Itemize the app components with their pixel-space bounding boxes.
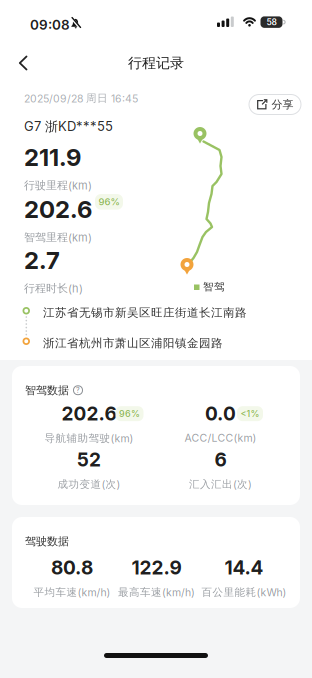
staticText: 0.0 (205, 400, 236, 427)
staticText: 58 (266, 16, 276, 28)
staticText: 211.9 (24, 140, 81, 175)
staticText: 202.6 (61, 400, 116, 427)
staticText: 122.9 (131, 554, 181, 581)
staticText: 浙江省杭州市萧山区浦阳镇金园路 (43, 334, 223, 352)
staticText: <1% (240, 407, 259, 420)
staticText: 202.6 (24, 192, 92, 227)
staticText: 2.7 (24, 243, 60, 278)
staticText: ? (76, 385, 80, 395)
staticText: 导航辅助驾驶(km) (44, 430, 133, 446)
staticText: 分享 (271, 96, 293, 113)
staticText: 智驾数据 (25, 382, 69, 398)
staticText: 智驾 (203, 279, 225, 295)
staticText: 96% (98, 195, 119, 209)
staticText: 江苏省无锡市新吴区旺庄街道长江南路 (43, 304, 247, 321)
staticText: 驾驶数据 (25, 533, 69, 549)
staticText: 行驶里程(km) (24, 177, 92, 194)
button[interactable]: 智驾数据说明 (73, 385, 83, 395)
staticText: 6 (214, 446, 226, 473)
staticText: 平均车速(km/h) (33, 584, 110, 600)
staticText: 百公里能耗(kWh) (201, 584, 286, 600)
staticText: 汇入汇出(次) (189, 476, 252, 492)
staticText: 52 (77, 446, 101, 473)
staticText: 14.4 (224, 554, 263, 581)
staticText: 成功变道(次) (57, 476, 120, 492)
staticText: 96% (119, 407, 140, 420)
staticText: 智驾里程(km) (24, 229, 92, 246)
staticText: 行程记录 (128, 52, 184, 73)
staticText: 80.8 (51, 554, 93, 581)
staticText: 2025/09/28 周日 16:45 (24, 90, 138, 106)
button[interactable]: Back (10, 47, 37, 79)
staticText: 行程时长(h) (24, 280, 83, 297)
button[interactable]: 分享 (248, 94, 301, 115)
staticText: G7 浙KD***55 (24, 117, 113, 136)
staticText: 09:08 (30, 15, 70, 34)
staticText: 最高车速(km/h) (118, 584, 195, 600)
staticText: ACC/LCC(km) (184, 430, 256, 445)
